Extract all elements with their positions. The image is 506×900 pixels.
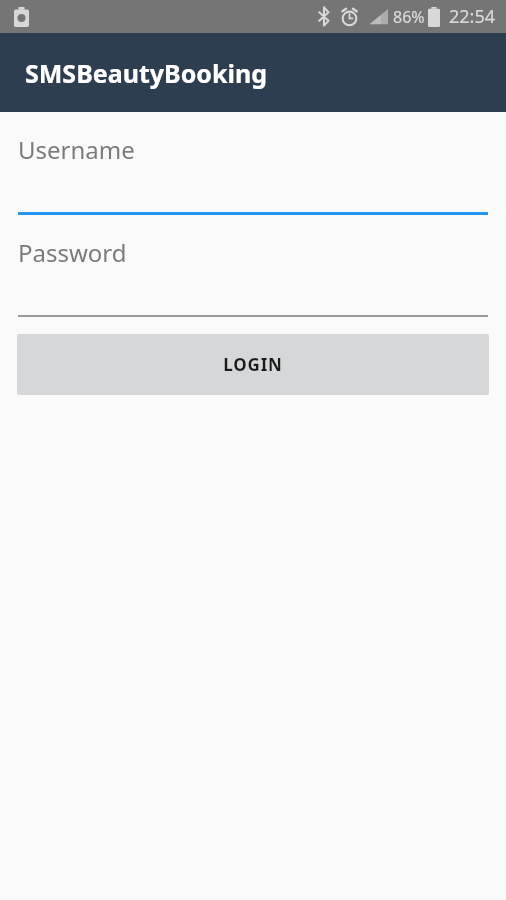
staticText: Password — [18, 236, 127, 269]
button[interactable]: LOGIN — [17, 334, 489, 395]
staticText: Username — [18, 133, 135, 166]
staticText: 86% — [393, 6, 425, 28]
button[interactable]: Password — [18, 236, 488, 317]
staticText: SMSBeautyBooking — [25, 56, 267, 90]
button[interactable]: Username — [18, 133, 488, 215]
staticText: 22:54 — [449, 4, 496, 29]
staticText: LOGIN — [223, 353, 283, 376]
